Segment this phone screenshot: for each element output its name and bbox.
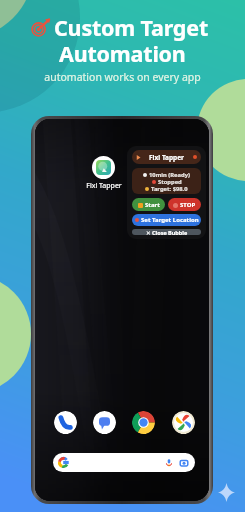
button[interactable]: STOP — [168, 198, 201, 211]
staticText: Flxl Tapper — [86, 181, 122, 191]
button[interactable]: Flxl Tapper bubble — [92, 156, 115, 179]
button[interactable]: Google Search — [53, 453, 195, 472]
staticText: Target: $98.0 — [151, 185, 188, 192]
staticText: STOP — [180, 201, 196, 209]
button[interactable]: Flxl Tapper — [132, 150, 201, 164]
staticText: Flxl Tapper — [149, 153, 185, 162]
button[interactable]: Messages — [93, 411, 116, 434]
staticText: ✕ Close Bubble — [146, 229, 188, 235]
button[interactable]: Start — [132, 198, 165, 211]
staticText: Start — [145, 201, 160, 209]
staticText: Set Target Location — [141, 216, 199, 224]
other: Google Lens — [179, 458, 189, 468]
staticText: Stopped — [158, 178, 182, 185]
button[interactable]: Photos — [172, 411, 195, 434]
staticText: automation works on every app — [44, 70, 201, 84]
button[interactable]: ✕ Close Bubble — [132, 229, 201, 235]
other: Voice search — [164, 458, 174, 468]
staticText: Custom Target — [54, 13, 209, 42]
other: Google Search — [58, 457, 69, 468]
staticText: 10min (Ready) — [149, 171, 190, 178]
button[interactable]: Set Target Location — [132, 214, 201, 226]
button[interactable]: Chrome — [132, 411, 155, 434]
staticText: Automation — [59, 39, 186, 68]
button[interactable]: Phone — [54, 411, 77, 434]
